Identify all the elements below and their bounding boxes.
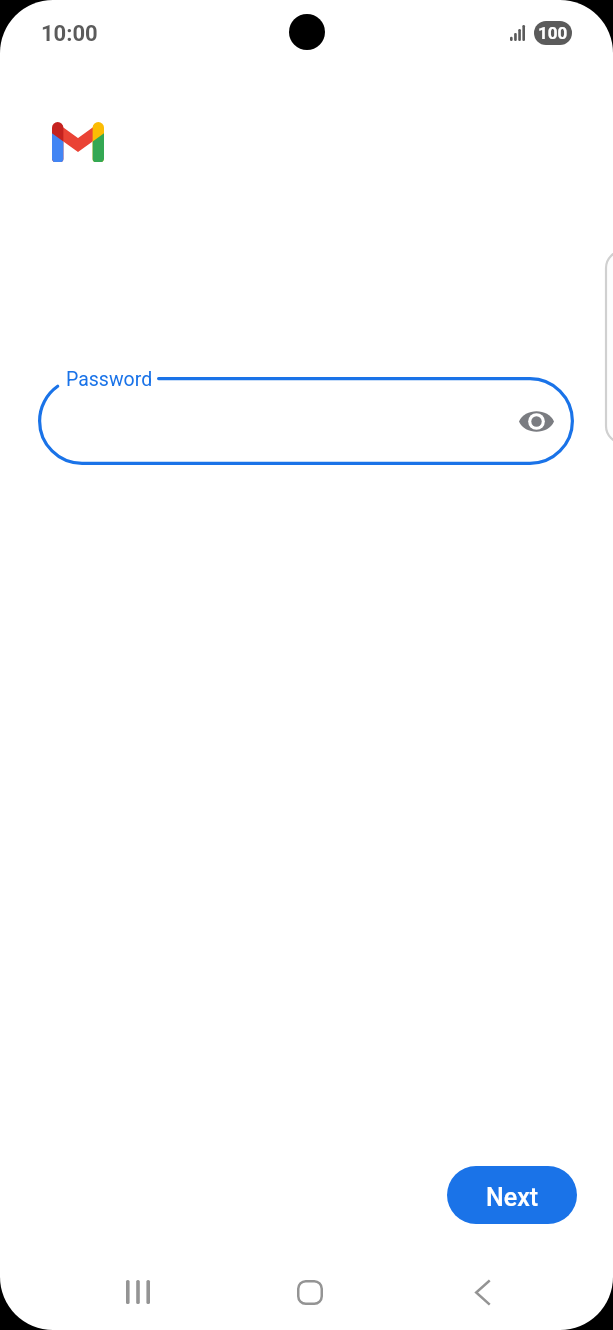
button[interactable]: Show password: [510, 395, 562, 447]
staticText: 100: [538, 23, 568, 43]
button[interactable]: Recent apps: [95, 1261, 181, 1323]
staticText: Password: [66, 368, 153, 391]
button[interactable]: Home: [267, 1261, 353, 1323]
staticText: Next: [486, 1183, 539, 1212]
staticText: 10:00: [41, 21, 98, 47]
button[interactable]: Next: [447, 1166, 577, 1224]
button[interactable]: Back: [439, 1261, 525, 1323]
button[interactable]: Password: [38, 377, 574, 465]
